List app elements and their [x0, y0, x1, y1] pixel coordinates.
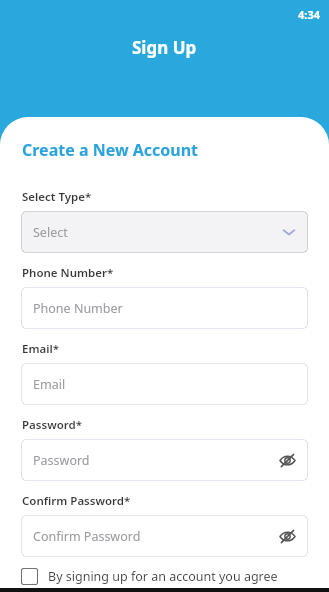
staticText: Phone Number — [33, 300, 123, 317]
button[interactable]: Phone Number — [21, 287, 308, 329]
staticText: Create a New Account — [22, 139, 199, 161]
staticText: Confirm Password* — [22, 493, 131, 509]
staticText: Confirm Password — [33, 528, 141, 545]
button[interactable]: Show password — [276, 449, 298, 471]
button[interactable]: Password — [21, 439, 308, 481]
staticText: Password* — [22, 417, 83, 433]
staticText: Email* — [22, 341, 59, 357]
staticText: By signing up for an account you agree — [48, 568, 278, 585]
staticText: Phone Number* — [22, 265, 114, 281]
button[interactable]: Confirm Password — [21, 515, 308, 557]
staticText: Password — [33, 452, 90, 469]
button[interactable]: Email — [21, 363, 308, 405]
staticText: Select Type* — [22, 189, 92, 205]
button[interactable]: Show password — [276, 525, 298, 547]
staticText: 4:34 — [298, 7, 320, 22]
button[interactable]: Select — [21, 211, 308, 253]
button[interactable]: By signing up for an account you agree — [21, 568, 317, 585]
staticText: Email — [33, 376, 66, 393]
staticText: Select — [33, 224, 68, 241]
staticText: Sign Up — [132, 36, 197, 59]
